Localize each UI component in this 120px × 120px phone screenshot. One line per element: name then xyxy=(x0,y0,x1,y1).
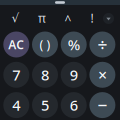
staticText: 5 xyxy=(41,95,49,115)
button[interactable]: ( ) xyxy=(32,31,58,57)
button[interactable]: ÷ xyxy=(89,31,115,57)
button[interactable]: 6 xyxy=(61,92,87,118)
button[interactable]: AC xyxy=(3,31,29,57)
button[interactable]: 9 xyxy=(61,62,87,88)
staticText: % xyxy=(68,35,80,54)
staticText: AC xyxy=(8,36,24,52)
staticText: ! xyxy=(90,10,93,26)
button[interactable]: % xyxy=(61,31,87,57)
button[interactable]: √ xyxy=(6,9,24,27)
staticText: − xyxy=(97,94,107,117)
button[interactable]: Collapse scientific keys xyxy=(103,13,114,24)
staticText: 9 xyxy=(70,65,78,85)
staticText: ÷ xyxy=(97,33,107,56)
staticText: ^ xyxy=(64,11,71,27)
staticText: √ xyxy=(11,11,19,25)
staticText: π xyxy=(38,10,46,26)
button[interactable]: ^ xyxy=(59,9,77,27)
button[interactable]: 5 xyxy=(32,92,58,118)
staticText: 6 xyxy=(70,95,78,115)
button[interactable]: 4 xyxy=(3,92,29,118)
staticText: 8 xyxy=(41,65,49,85)
staticText: ( ) xyxy=(39,36,50,52)
button[interactable]: − xyxy=(89,92,115,118)
staticText: 7 xyxy=(12,65,20,85)
staticText: 4 xyxy=(12,95,20,115)
button[interactable]: 8 xyxy=(32,62,58,88)
button[interactable]: π xyxy=(33,9,51,27)
button[interactable]: × xyxy=(89,62,115,88)
button[interactable]: 7 xyxy=(3,62,29,88)
button[interactable]: ! xyxy=(83,9,101,27)
staticText: × xyxy=(98,64,107,85)
